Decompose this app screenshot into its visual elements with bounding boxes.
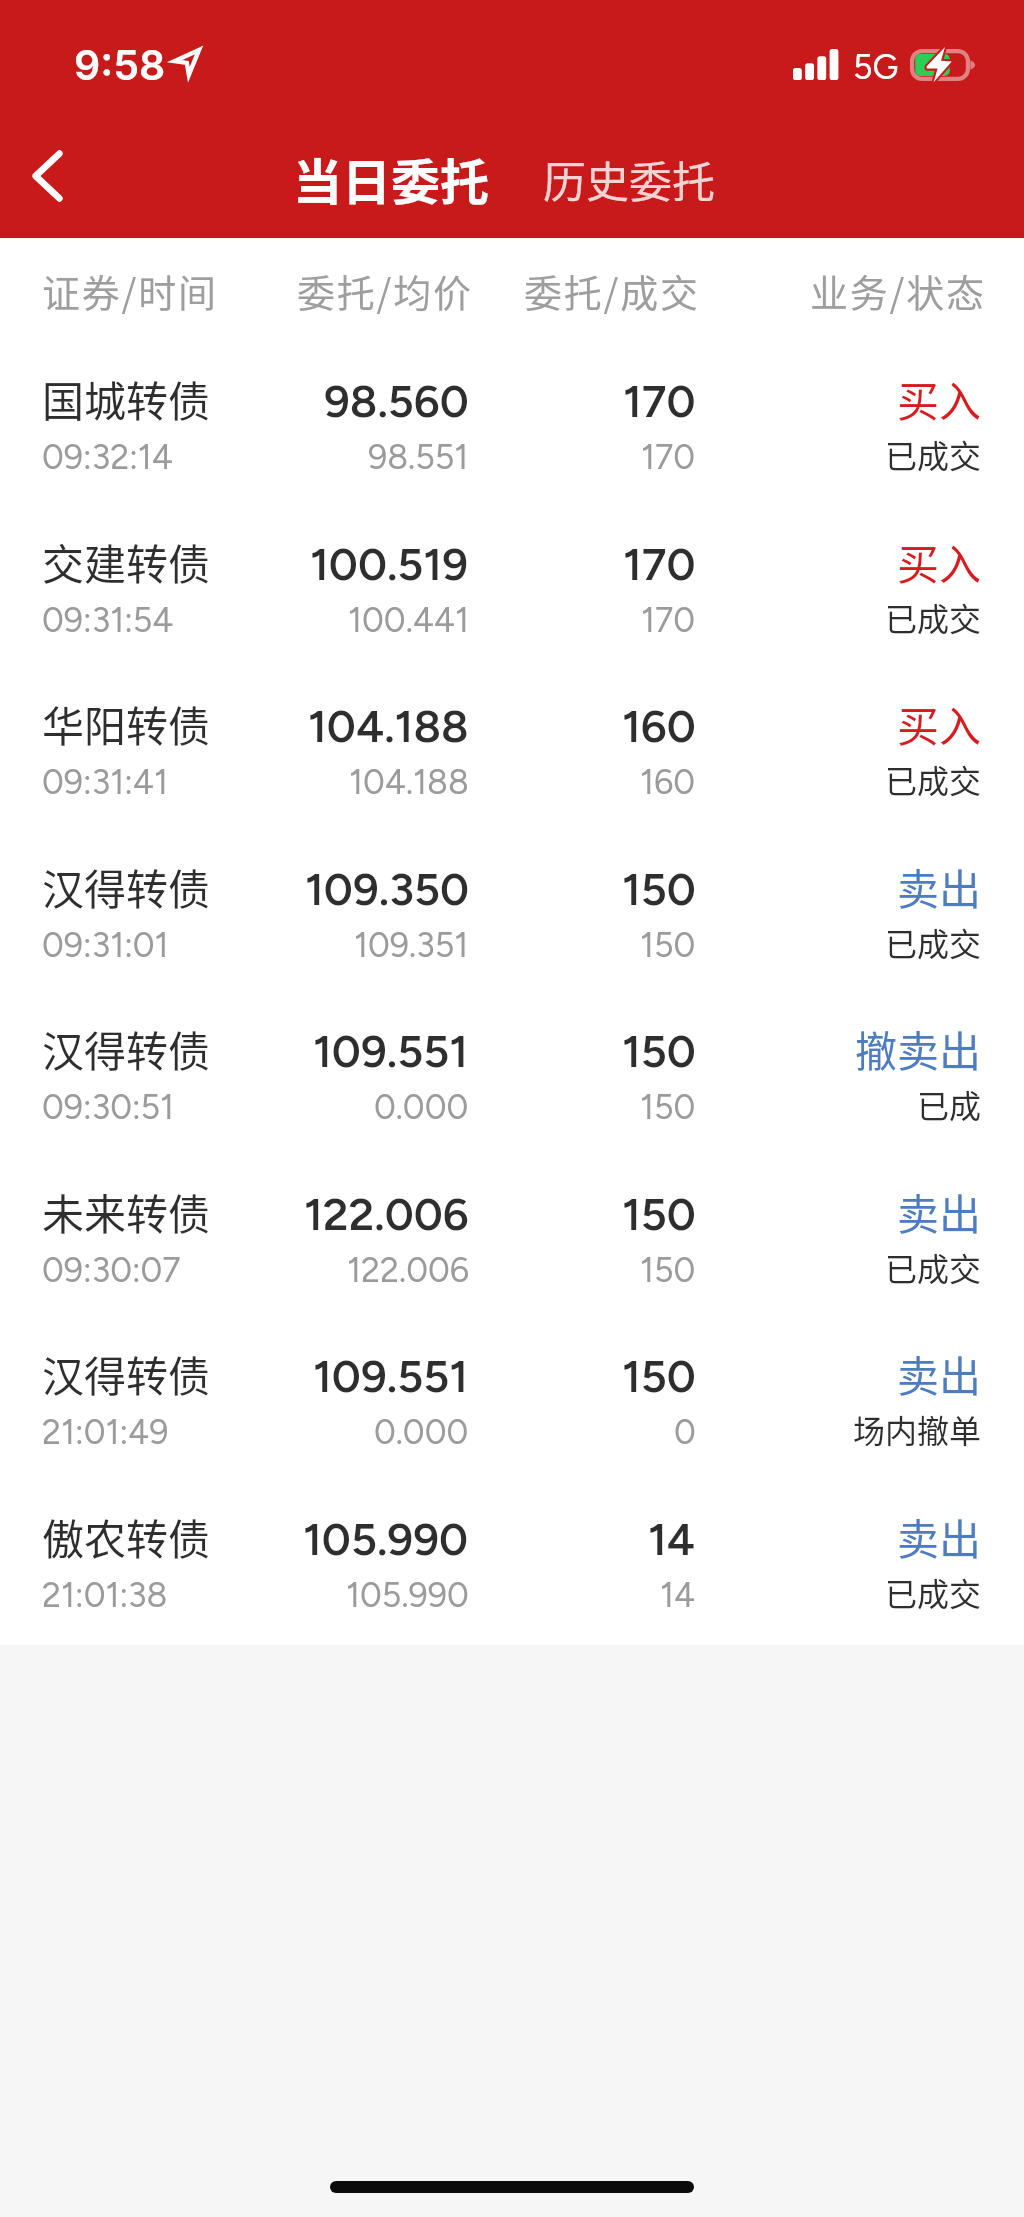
staticText: 170: [623, 537, 696, 591]
staticText: 122.006: [347, 1250, 469, 1291]
staticText: 150: [622, 1187, 696, 1241]
staticText: 买入: [897, 693, 982, 754]
staticText: 已成交: [885, 594, 982, 640]
staticText: 109.350: [305, 862, 469, 916]
staticText: 105.990: [346, 1575, 469, 1616]
staticText: 5G: [853, 47, 899, 88]
staticText: 100.441: [348, 600, 469, 641]
staticText: 华阳转债: [42, 693, 211, 754]
staticText: 已成交: [885, 431, 982, 477]
button[interactable]: 汉得转债: [0, 993, 1024, 1156]
staticText: 09:31:54: [42, 600, 174, 641]
staticText: 170: [623, 374, 696, 428]
staticText: 已成交: [885, 756, 982, 802]
staticText: 150: [640, 925, 696, 966]
staticText: 122.006: [304, 1187, 469, 1241]
staticText: 09:32:14: [42, 437, 173, 478]
button[interactable]: 华阳转债: [0, 668, 1024, 831]
staticText: 撤卖出: [855, 1018, 982, 1079]
button[interactable]: 交建转债: [0, 506, 1024, 669]
staticText: 买入: [897, 368, 982, 429]
staticText: 国城转债: [42, 368, 211, 429]
staticText: 160: [640, 762, 696, 803]
staticText: 21:01:38: [42, 1575, 168, 1616]
staticText: 卖出: [897, 1343, 982, 1404]
staticText: 09:30:07: [42, 1250, 181, 1291]
staticText: 150: [622, 1024, 696, 1078]
staticText: 14: [660, 1575, 696, 1616]
staticText: 卖出: [897, 856, 982, 917]
staticText: 委托/成交: [524, 263, 700, 318]
staticText: 汉得转债: [42, 1018, 211, 1079]
staticText: 150: [640, 1250, 696, 1291]
staticText: 104.188: [308, 699, 469, 753]
staticText: 109.551: [313, 1024, 469, 1078]
staticText: 21:01:49: [42, 1412, 169, 1453]
button[interactable]: 国城转债: [0, 343, 1024, 506]
staticText: 已成交: [885, 1244, 982, 1290]
staticText: 98.551: [368, 437, 469, 478]
staticText: 109.551: [313, 1349, 469, 1403]
staticText: 0.000: [374, 1087, 469, 1128]
button[interactable]: 未来转债: [0, 1156, 1024, 1319]
staticText: 场内撤单: [853, 1406, 982, 1452]
staticText: 汉得转债: [42, 1343, 211, 1404]
staticText: 160: [622, 699, 696, 753]
staticText: 0.000: [374, 1412, 469, 1453]
staticText: 卖出: [897, 1181, 982, 1242]
staticText: 证券/时间: [42, 263, 218, 318]
staticText: 业务/状态: [810, 263, 986, 318]
staticText: 09:31:41: [42, 762, 168, 803]
staticText: 历史委托: [543, 148, 715, 210]
staticText: 0: [674, 1412, 696, 1453]
staticText: 汉得转债: [42, 856, 211, 917]
staticText: 105.990: [303, 1512, 469, 1566]
staticText: 09:31:01: [42, 925, 169, 966]
staticText: 150: [640, 1087, 696, 1128]
staticText: 未来转债: [42, 1181, 211, 1242]
button[interactable]: 当日委托: [287, 137, 496, 220]
button[interactable]: 傲农转债: [0, 1481, 1024, 1644]
staticText: 已成交: [885, 1569, 982, 1615]
staticText: 买入: [897, 531, 982, 592]
staticText: 卖出: [897, 1506, 982, 1567]
staticText: 98.560: [324, 374, 469, 428]
staticText: 109.351: [354, 925, 469, 966]
staticText: 170: [641, 437, 696, 478]
staticText: 170: [641, 600, 696, 641]
staticText: 已成交: [885, 919, 982, 965]
staticText: 委托/均价: [297, 263, 473, 318]
button[interactable]: Back: [0, 118, 94, 234]
button[interactable]: 历史委托: [537, 142, 721, 216]
staticText: 交建转债: [42, 531, 211, 592]
staticText: 傲农转债: [42, 1506, 211, 1567]
button[interactable]: 汉得转债: [0, 1318, 1024, 1481]
staticText: 已成: [917, 1081, 982, 1127]
staticText: 104.188: [349, 762, 469, 803]
staticText: 100.519: [310, 537, 469, 591]
staticText: 14: [648, 1512, 696, 1566]
button[interactable]: 汉得转债: [0, 831, 1024, 994]
staticText: 9:58: [74, 40, 166, 90]
staticText: 150: [622, 862, 696, 916]
staticText: 150: [622, 1349, 696, 1403]
staticText: 当日委托: [293, 143, 490, 214]
staticText: 09:30:51: [42, 1087, 175, 1128]
